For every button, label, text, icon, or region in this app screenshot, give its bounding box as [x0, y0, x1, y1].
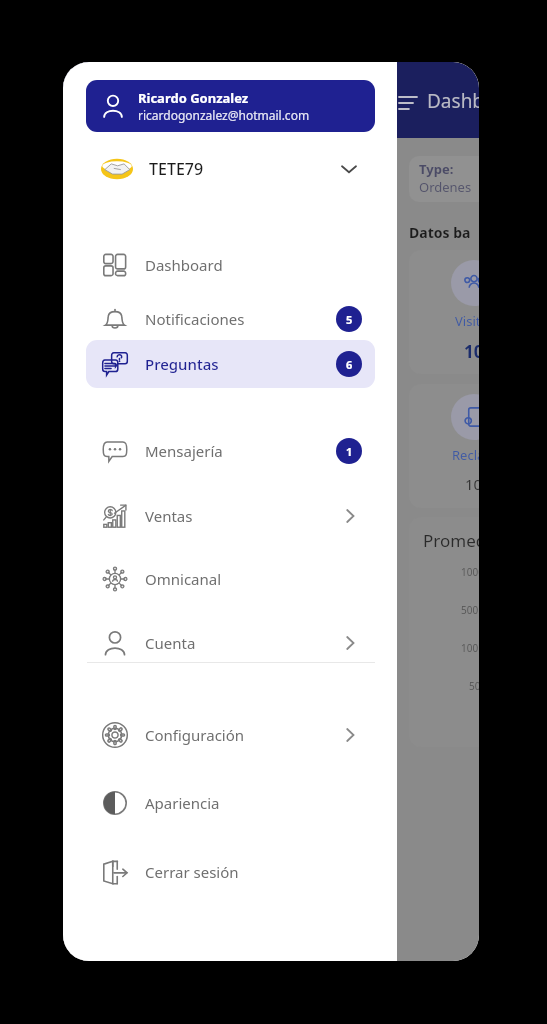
button[interactable]: Apariencia: [86, 779, 375, 827]
staticText: Type:: [419, 160, 454, 178]
staticText: TETE79: [149, 158, 204, 180]
staticText: 50: [469, 679, 479, 693]
staticText: 5: [346, 312, 353, 327]
button[interactable]: Notificaciones: [86, 295, 375, 343]
staticText: Preguntas: [145, 354, 219, 374]
staticText: 10: [464, 340, 479, 363]
button[interactable]: Mensajería: [86, 427, 375, 475]
staticText: Mensajería: [145, 441, 223, 461]
staticText: Visitas: [455, 312, 479, 330]
button[interactable]: Ricardo Gonzalez: [86, 80, 375, 132]
staticText: Ventas: [145, 506, 193, 526]
button[interactable]: TETE79: [86, 145, 375, 193]
staticText: Cuenta: [145, 633, 196, 653]
staticText: 1000: [461, 565, 479, 579]
staticText: 1: [346, 444, 353, 459]
button[interactable]: Omnicanal: [86, 555, 375, 603]
staticText: Reclam: [452, 446, 479, 464]
staticText: Dashboard: [427, 88, 479, 114]
button[interactable]: Cerrar sesión: [86, 848, 375, 896]
staticText: Cerrar sesión: [145, 862, 239, 882]
staticText: Ordenes: [419, 178, 472, 196]
staticText: 10: [465, 474, 479, 494]
staticText: Ricardo Gonzalez: [138, 89, 249, 107]
button[interactable]: Preguntas: [86, 340, 375, 388]
staticText: Notificaciones: [145, 309, 245, 329]
staticText: 6: [346, 357, 353, 372]
staticText: Configuración: [145, 725, 245, 745]
staticText: 500: [461, 603, 479, 617]
staticText: Promed: [423, 529, 479, 552]
staticText: Datos ba: [409, 223, 471, 242]
staticText: Apariencia: [145, 793, 220, 813]
staticText: ricardogonzalez@hotmail.com: [138, 107, 310, 123]
button[interactable]: Configuración: [86, 711, 375, 759]
button[interactable]: Dashboard: [86, 241, 375, 289]
staticText: Dashboard: [145, 255, 223, 275]
button[interactable]: Cuenta: [86, 619, 375, 667]
staticText: 100: [461, 641, 479, 655]
button[interactable]: Ventas: [86, 492, 375, 540]
staticText: Omnicanal: [145, 569, 222, 589]
